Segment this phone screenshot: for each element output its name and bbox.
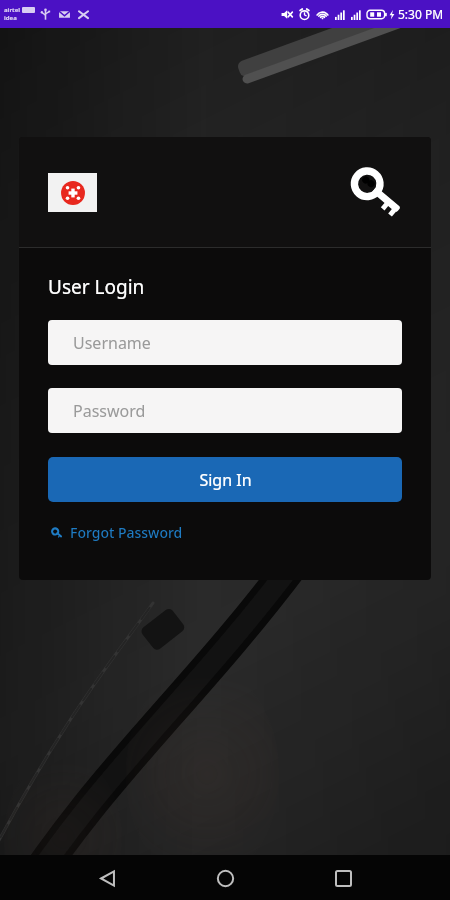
button[interactable]: Recent apps — [321, 856, 365, 900]
staticText: User Login — [48, 274, 145, 300]
other: Key — [345, 160, 409, 224]
staticText: Forgot Password — [70, 523, 183, 542]
button[interactable]: Sign In — [48, 457, 402, 502]
staticText: idea — [4, 14, 17, 22]
button[interactable]: Forgot Password — [48, 519, 185, 546]
staticText: 5:30 PM — [398, 6, 444, 22]
button[interactable]: Home — [203, 856, 247, 900]
staticText: airtel — [4, 6, 21, 14]
button[interactable]: Back — [85, 856, 129, 900]
staticText: Password — [73, 400, 146, 422]
staticText: Username — [73, 332, 151, 354]
button[interactable]: Password — [48, 388, 402, 433]
staticText: Sign In — [199, 469, 252, 491]
button[interactable]: Username — [48, 320, 402, 365]
